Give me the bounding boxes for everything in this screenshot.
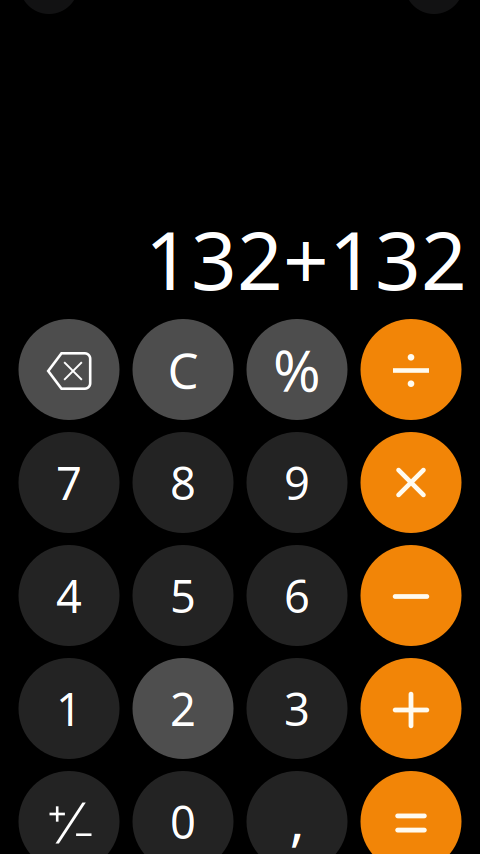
staticText: 8 — [170, 452, 196, 513]
staticText: % — [273, 331, 321, 407]
button[interactable]: Divide — [360, 319, 461, 420]
button[interactable]: Multiply — [360, 432, 461, 533]
button[interactable]: 6 — [246, 545, 347, 646]
staticText: 1 — [56, 678, 82, 739]
button[interactable]: 2 — [132, 658, 233, 759]
button[interactable]: 1 — [18, 658, 119, 759]
button[interactable]: 4 — [18, 545, 119, 646]
button[interactable]: 7 — [18, 432, 119, 533]
staticText: 5 — [170, 565, 196, 626]
button[interactable]: 8 — [132, 432, 233, 533]
button[interactable]: % — [246, 319, 347, 420]
button[interactable]: 0 — [132, 771, 233, 854]
staticText: 4 — [56, 565, 82, 626]
staticText: 3 — [284, 678, 310, 739]
button[interactable]: Add — [360, 658, 461, 759]
button[interactable]: 3 — [246, 658, 347, 759]
staticText: C — [167, 337, 198, 402]
button[interactable]: Plus minus — [18, 771, 119, 854]
button[interactable]: 9 — [246, 432, 347, 533]
staticText: 7 — [56, 452, 82, 513]
button[interactable]: C — [132, 319, 233, 420]
staticText: 9 — [284, 452, 310, 513]
staticText: , — [289, 780, 304, 854]
button[interactable]: Subtract — [360, 545, 461, 646]
button[interactable]: Equals — [360, 771, 461, 854]
button[interactable]: Delete — [18, 319, 119, 420]
staticText: 132+132 — [145, 206, 467, 312]
staticText: 6 — [284, 565, 310, 626]
staticText: 0 — [170, 791, 196, 852]
button[interactable]: , — [246, 771, 347, 854]
button[interactable]: 5 — [132, 545, 233, 646]
staticText: 2 — [170, 678, 196, 739]
